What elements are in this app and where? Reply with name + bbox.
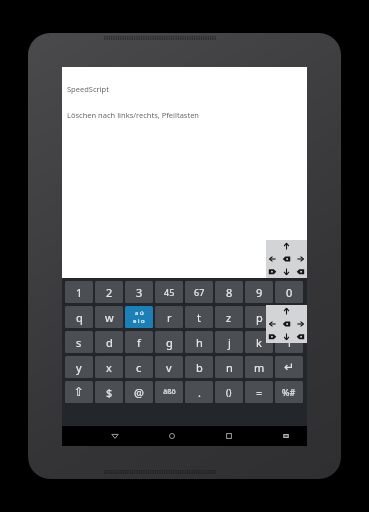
button[interactable]: n [215, 356, 243, 378]
staticText: e i o [133, 317, 145, 325]
staticText: h [196, 335, 203, 350]
staticText: ← [284, 311, 294, 324]
button[interactable]: j [215, 331, 243, 353]
staticText: $ [106, 385, 113, 400]
button[interactable]: . [185, 381, 213, 403]
button[interactable]: v [155, 356, 183, 378]
staticText: c [136, 360, 142, 375]
staticText: 9 [256, 285, 263, 300]
staticText: a ü [135, 309, 144, 317]
staticText: r [167, 310, 172, 325]
staticText: 8 [226, 285, 233, 300]
staticText: () [226, 386, 232, 398]
staticText: j [228, 335, 231, 350]
staticText: @ [134, 385, 144, 400]
button[interactable]: Cursor and delete keys [266, 305, 307, 343]
staticText: q [76, 310, 83, 325]
staticText: SpeedScript [67, 84, 109, 94]
button[interactable]: l [275, 331, 303, 353]
button[interactable]: w [95, 306, 123, 328]
button[interactable]: 45 [155, 281, 183, 303]
button[interactable]: Home [163, 427, 181, 445]
button[interactable]: h [185, 331, 213, 353]
staticText: äßö [163, 387, 176, 397]
staticText: ↵ [284, 360, 295, 374]
button[interactable]: s [65, 331, 93, 353]
button[interactable]: q [65, 306, 93, 328]
staticText: Löschen nach links/rechts, Pfeiltasten [67, 110, 199, 120]
button[interactable]: x [95, 356, 123, 378]
staticText: y [76, 360, 82, 375]
staticText: v [166, 360, 172, 375]
staticText: x [106, 360, 112, 375]
staticText: n [226, 360, 233, 375]
staticText: k [256, 335, 262, 350]
staticText: . [198, 385, 201, 400]
button[interactable]: t [185, 306, 213, 328]
button[interactable]: c [125, 356, 153, 378]
button[interactable]: 67 [185, 281, 213, 303]
staticText: s [76, 335, 82, 350]
button[interactable]: p [245, 306, 273, 328]
button[interactable]: äßö [155, 381, 183, 403]
button[interactable]: ← [275, 306, 303, 328]
staticText: 3 [136, 285, 143, 300]
staticText: t [197, 310, 201, 325]
button[interactable]: z [215, 306, 243, 328]
staticText: 0 [286, 285, 293, 300]
button[interactable]: 9 [245, 281, 273, 303]
staticText: = [256, 385, 263, 400]
staticText: l [288, 335, 291, 350]
staticText: m [254, 360, 265, 375]
button[interactable]: d [95, 331, 123, 353]
button[interactable]: ↵ [275, 356, 303, 378]
button[interactable]: a ü [125, 306, 153, 328]
button[interactable]: 1 [65, 281, 93, 303]
button[interactable]: f [125, 331, 153, 353]
button[interactable]: %# [275, 381, 303, 403]
button[interactable]: 8 [215, 281, 243, 303]
button[interactable]: Cursor and delete keys [266, 240, 307, 278]
button[interactable]: @ [125, 381, 153, 403]
staticText: %# [282, 386, 296, 398]
button[interactable]: Recents [220, 427, 238, 445]
staticText: p [256, 310, 263, 325]
staticText: 1 [76, 285, 83, 300]
staticText: 67 [194, 286, 205, 298]
staticText: d [106, 335, 113, 350]
staticText: w [105, 310, 114, 325]
staticText: ⇧ [74, 385, 85, 399]
button[interactable]: 0 [275, 281, 303, 303]
staticText: 2 [106, 285, 113, 300]
button[interactable]: b [185, 356, 213, 378]
button[interactable]: Keyboard [277, 427, 295, 445]
button[interactable]: () [215, 381, 243, 403]
button[interactable]: ⇧ [65, 381, 93, 403]
button[interactable]: 2 [95, 281, 123, 303]
button[interactable]: $ [95, 381, 123, 403]
staticText: f [137, 335, 141, 350]
staticText: b [196, 360, 203, 375]
button[interactable]: m [245, 356, 273, 378]
button[interactable]: = [245, 381, 273, 403]
button[interactable]: r [155, 306, 183, 328]
staticText: g [166, 335, 173, 350]
button[interactable]: k [245, 331, 273, 353]
staticText: z [226, 310, 232, 325]
button[interactable]: y [65, 356, 93, 378]
staticText: 45 [164, 286, 175, 298]
button[interactable]: g [155, 331, 183, 353]
button[interactable]: 3 [125, 281, 153, 303]
button[interactable]: Back [106, 427, 124, 445]
